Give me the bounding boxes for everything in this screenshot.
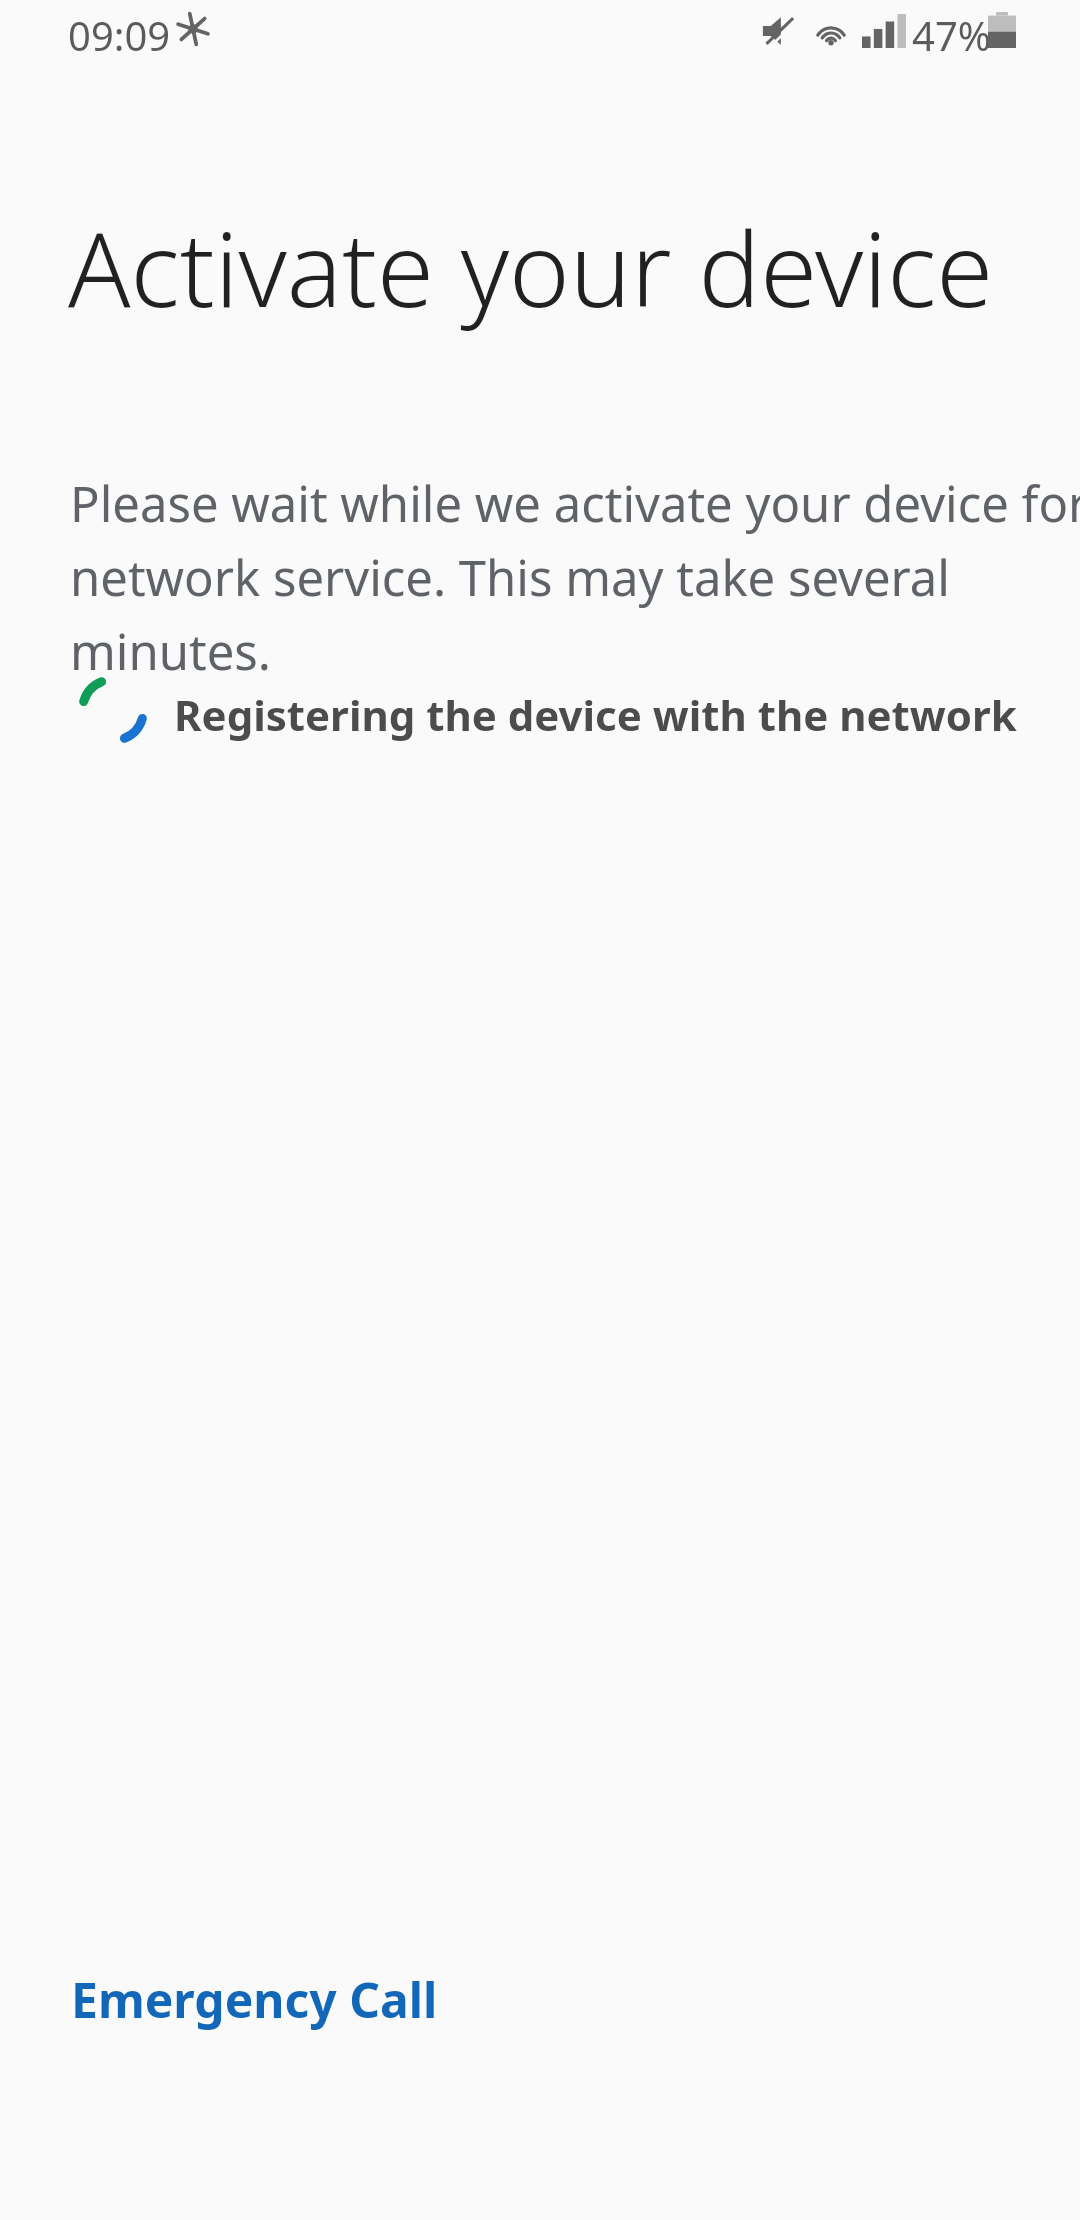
other: Mobile signal bbox=[862, 14, 906, 48]
staticText: 47% bbox=[912, 8, 991, 62]
staticText: Please wait while we activate your devic… bbox=[70, 470, 1080, 684]
staticText: Emergency Call bbox=[71, 1967, 438, 2032]
staticText: 09:09 bbox=[68, 8, 171, 62]
other: Wi-Fi connected bbox=[812, 13, 850, 51]
other: Sound muted bbox=[760, 13, 796, 49]
other: Battery 47 percent bbox=[988, 12, 1016, 48]
staticText: Activate your device bbox=[68, 197, 994, 337]
button[interactable]: Emergency Call bbox=[40, 1950, 407, 2015]
staticText: Registering the device with the network bbox=[174, 686, 1017, 743]
